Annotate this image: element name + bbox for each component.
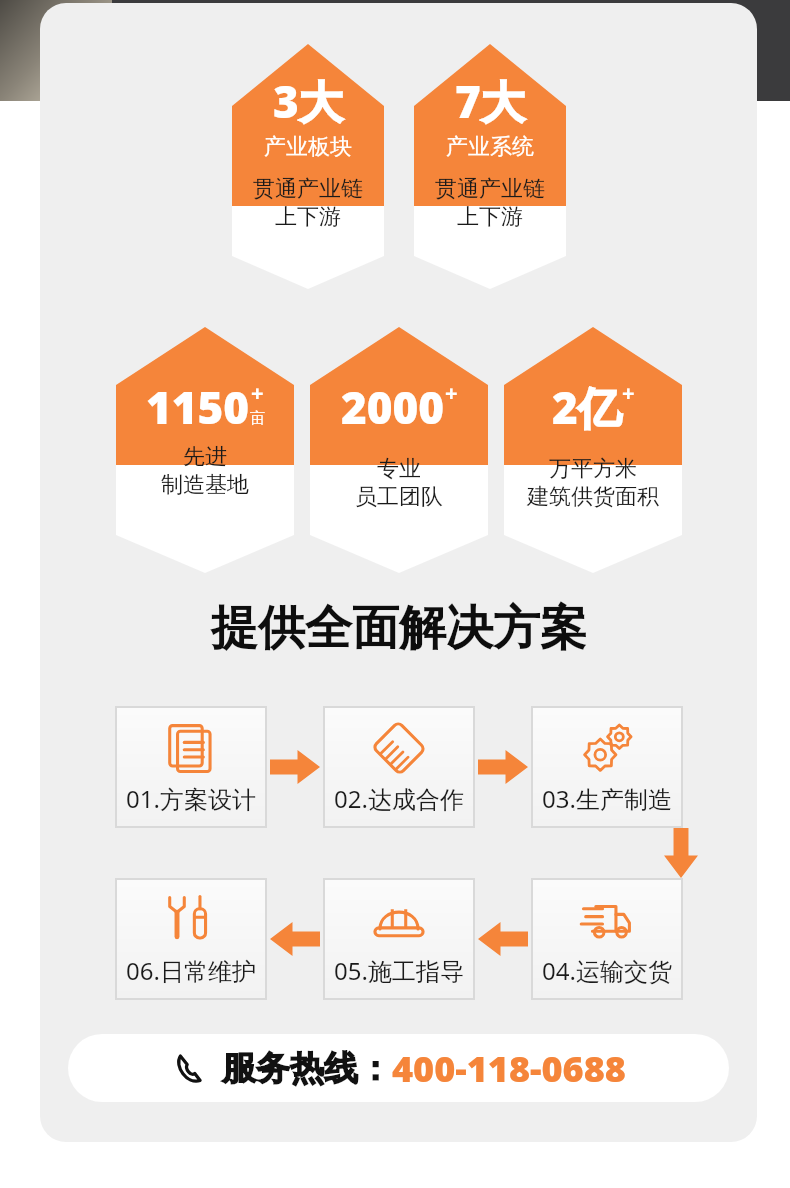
button[interactable]: 05.施工指导	[325, 880, 473, 998]
staticText: 产业板块	[264, 133, 352, 161]
staticText: 亩	[250, 409, 265, 428]
button[interactable]: 2亿	[504, 327, 682, 573]
button[interactable]: 2000	[310, 327, 488, 573]
staticText: 专业	[377, 455, 421, 483]
staticText: 制造基地	[161, 471, 249, 499]
staticText: +	[251, 377, 264, 407]
staticText: 上下游	[457, 203, 523, 231]
staticText: 万平方米	[549, 455, 637, 483]
other: Call	[172, 1050, 210, 1088]
button[interactable]: 04.运输交货	[533, 880, 681, 998]
staticText: +	[622, 377, 635, 407]
staticText: 05.施工指导	[334, 954, 464, 987]
staticText: 06.日常维护	[126, 954, 256, 987]
staticText: 贯通产业链	[253, 175, 363, 203]
staticText: 1150	[146, 377, 250, 437]
button[interactable]: 3大	[232, 44, 384, 289]
button[interactable]: 06.日常维护	[117, 880, 265, 998]
staticText: 建筑供货面积	[527, 483, 659, 511]
staticText: 04.运输交货	[542, 954, 672, 987]
staticText: 提供全面解决方案	[211, 599, 587, 658]
staticText: 2亿	[552, 377, 622, 437]
staticText: +	[445, 377, 458, 407]
button[interactable]: 03.生产制造	[533, 708, 681, 826]
button[interactable]: 02.达成合作	[325, 708, 473, 826]
staticText: 01.方案设计	[126, 782, 256, 815]
staticText: 先进	[183, 443, 227, 471]
staticText: 员工团队	[355, 483, 443, 511]
button[interactable]: 1150	[116, 327, 294, 573]
staticText: 2000	[341, 377, 445, 437]
staticText: 3大	[273, 71, 343, 131]
button[interactable]: Call	[68, 1034, 729, 1102]
staticText: 03.生产制造	[542, 782, 672, 815]
staticText: 02.达成合作	[334, 782, 464, 815]
staticText: 上下游	[275, 203, 341, 231]
button[interactable]: 01.方案设计	[117, 708, 265, 826]
staticText: 400-118-0688	[392, 1044, 626, 1093]
button[interactable]: 7大	[414, 44, 566, 289]
staticText: 7大	[455, 71, 525, 131]
staticText: 服务热线：	[222, 1047, 392, 1090]
staticText: 产业系统	[446, 133, 534, 161]
staticText: 贯通产业链	[435, 175, 545, 203]
